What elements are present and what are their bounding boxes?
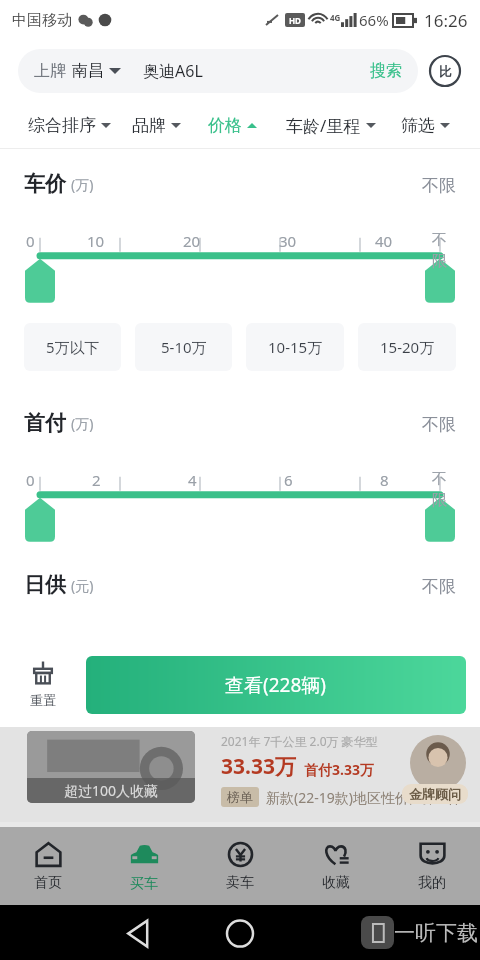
staticText: 首页 xyxy=(34,874,62,892)
staticText: 重置 xyxy=(30,692,56,708)
staticText: 南昌 xyxy=(72,61,104,81)
staticText: HD xyxy=(289,15,301,26)
button[interactable]: 5万以下 xyxy=(24,323,121,371)
staticText: 33.33万 xyxy=(221,752,296,781)
staticText: 5-10万 xyxy=(161,337,207,357)
button[interactable]: 5-10万 xyxy=(135,323,232,371)
staticText: 4G xyxy=(330,12,341,23)
staticText: (万) xyxy=(71,414,94,433)
button[interactable]: 上牌 xyxy=(18,49,418,93)
staticText: 卖车 xyxy=(226,874,254,892)
staticText: 不限 xyxy=(422,576,456,597)
button[interactable]: 收藏 xyxy=(288,827,384,905)
staticText: 15-20万 xyxy=(380,337,435,357)
button[interactable]: 价格 xyxy=(193,102,272,148)
staticText: 筛选 xyxy=(401,115,435,136)
staticText: 日供 xyxy=(24,572,66,598)
staticText: 10-15万 xyxy=(268,337,323,357)
button[interactable]: 我的 xyxy=(384,827,480,905)
staticText: 5万以下 xyxy=(46,337,100,357)
staticText: 新款(22-19款)地区性价比第2名 xyxy=(266,788,459,807)
staticText: (万) xyxy=(71,175,94,194)
button[interactable]: 10-15万 xyxy=(246,323,344,371)
staticText: 综合排序 xyxy=(28,115,96,136)
staticText: 66% xyxy=(359,10,389,30)
staticText: 超过100人收藏 xyxy=(64,781,159,800)
button[interactable]: 对比 xyxy=(428,54,462,88)
staticText: 品牌 xyxy=(132,115,166,136)
staticText: 20 xyxy=(183,231,201,251)
button[interactable]: 综合排序 xyxy=(18,102,120,148)
staticText: 一听下载 xyxy=(394,920,478,946)
staticText: 金牌顾问 xyxy=(409,786,461,802)
staticText: 不限 xyxy=(432,470,454,510)
button[interactable]: 筛选 xyxy=(389,102,462,148)
staticText: 不限 xyxy=(422,175,456,196)
staticText: 0 xyxy=(26,470,35,490)
button[interactable]: 首页 xyxy=(0,827,96,905)
staticText: 首付 xyxy=(24,410,66,436)
staticText: 40 xyxy=(375,231,393,251)
staticText: (元) xyxy=(71,576,94,595)
staticText: 榜单 xyxy=(227,789,253,805)
staticText: 搜索 xyxy=(370,61,402,81)
staticText: 车龄/里程 xyxy=(286,114,361,137)
staticText: 中国移动 xyxy=(12,11,72,30)
button[interactable]: 卖车 xyxy=(192,827,288,905)
staticText: 2021年 7千公里 2.0万 豪华型 xyxy=(221,733,378,749)
staticText: 不限 xyxy=(432,231,454,271)
staticText: 收藏 xyxy=(322,874,350,892)
staticText: 30 xyxy=(279,231,297,251)
button[interactable]: 买车 xyxy=(96,827,192,905)
staticText: 2 xyxy=(92,470,101,490)
staticText: 4 xyxy=(188,470,197,490)
staticText: 不限 xyxy=(422,414,456,435)
staticText: 我的 xyxy=(418,874,446,892)
staticText: 8 xyxy=(380,470,389,490)
button[interactable]: 重置 xyxy=(0,642,86,727)
button[interactable]: 15-20万 xyxy=(358,323,456,371)
staticText: 买车 xyxy=(130,875,158,893)
staticText: 0 xyxy=(26,231,35,251)
button[interactable]: 查看(228辆) xyxy=(86,656,466,714)
staticText: 查看(228辆) xyxy=(225,672,327,698)
staticText: 上牌 xyxy=(34,61,66,81)
staticText: 奥迪A6L xyxy=(143,60,203,82)
staticText: 10 xyxy=(87,231,105,251)
button[interactable]: 品牌 xyxy=(120,102,193,148)
staticText: 比 xyxy=(439,63,452,79)
staticText: 6 xyxy=(284,470,293,490)
staticText: 价格 xyxy=(208,115,242,136)
staticText: 首付3.33万 xyxy=(304,760,374,779)
staticText: 16:26 xyxy=(424,9,468,32)
button[interactable]: 车龄/里程 xyxy=(272,102,389,148)
staticText: 车价 xyxy=(24,171,66,197)
